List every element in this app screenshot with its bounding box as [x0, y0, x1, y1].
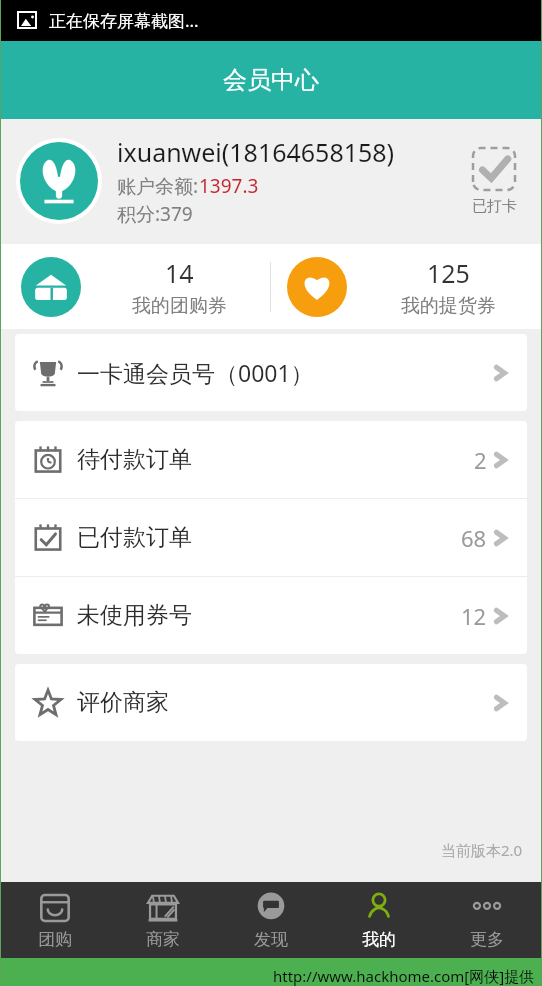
button[interactable]: 商家	[109, 882, 217, 958]
button[interactable]: 我的	[325, 882, 433, 958]
button[interactable]: 已打卡	[461, 146, 527, 216]
button[interactable]: 评价商家	[15, 664, 527, 741]
staticText: 待付款订单	[77, 445, 192, 474]
staticText: 我的提货券	[401, 294, 496, 318]
staticText: 已打卡	[472, 197, 517, 216]
staticText: 会员中心	[223, 65, 319, 95]
button[interactable]: 更多	[433, 882, 541, 958]
staticText: 商家	[146, 929, 180, 950]
button[interactable]: 一卡通会员号（0001）	[15, 334, 527, 411]
staticText: 积分:379	[117, 201, 193, 227]
staticText: 更多	[470, 929, 504, 950]
staticText: 一卡通会员号（0001）	[77, 357, 314, 388]
button[interactable]: 14	[1, 244, 270, 329]
staticText: 125	[427, 256, 470, 290]
button[interactable]: 待付款订单	[15, 421, 527, 498]
button[interactable]: ixuanwei(18164658158)	[1, 119, 541, 242]
button[interactable]: 125	[271, 244, 541, 329]
button[interactable]: 发现	[217, 882, 325, 958]
staticText: http://www.hackhome.com[网侠]提供	[273, 966, 535, 986]
staticText: 正在保存屏幕截图...	[49, 9, 199, 32]
staticText: 已付款订单	[77, 523, 192, 552]
staticText: 14	[165, 256, 194, 290]
staticText: 1397.3	[199, 173, 259, 199]
staticText: 发现	[254, 929, 288, 950]
staticText: 我的团购券	[132, 294, 227, 318]
staticText: 未使用券号	[77, 601, 192, 630]
button[interactable]: 团购	[1, 882, 109, 958]
staticText: ixuanwei(18164658158)	[117, 135, 395, 169]
staticText: 68	[461, 523, 487, 553]
staticText: 评价商家	[77, 688, 169, 717]
staticText: 12	[461, 601, 487, 631]
staticText: 2	[474, 445, 487, 475]
staticText: 我的	[362, 929, 396, 950]
staticText: 团购	[38, 929, 72, 950]
button[interactable]: 已付款订单	[15, 499, 527, 576]
button[interactable]: 未使用券号	[15, 577, 527, 654]
staticText: 当前版本2.0	[441, 840, 523, 860]
staticText: 账户余额:	[117, 173, 199, 199]
